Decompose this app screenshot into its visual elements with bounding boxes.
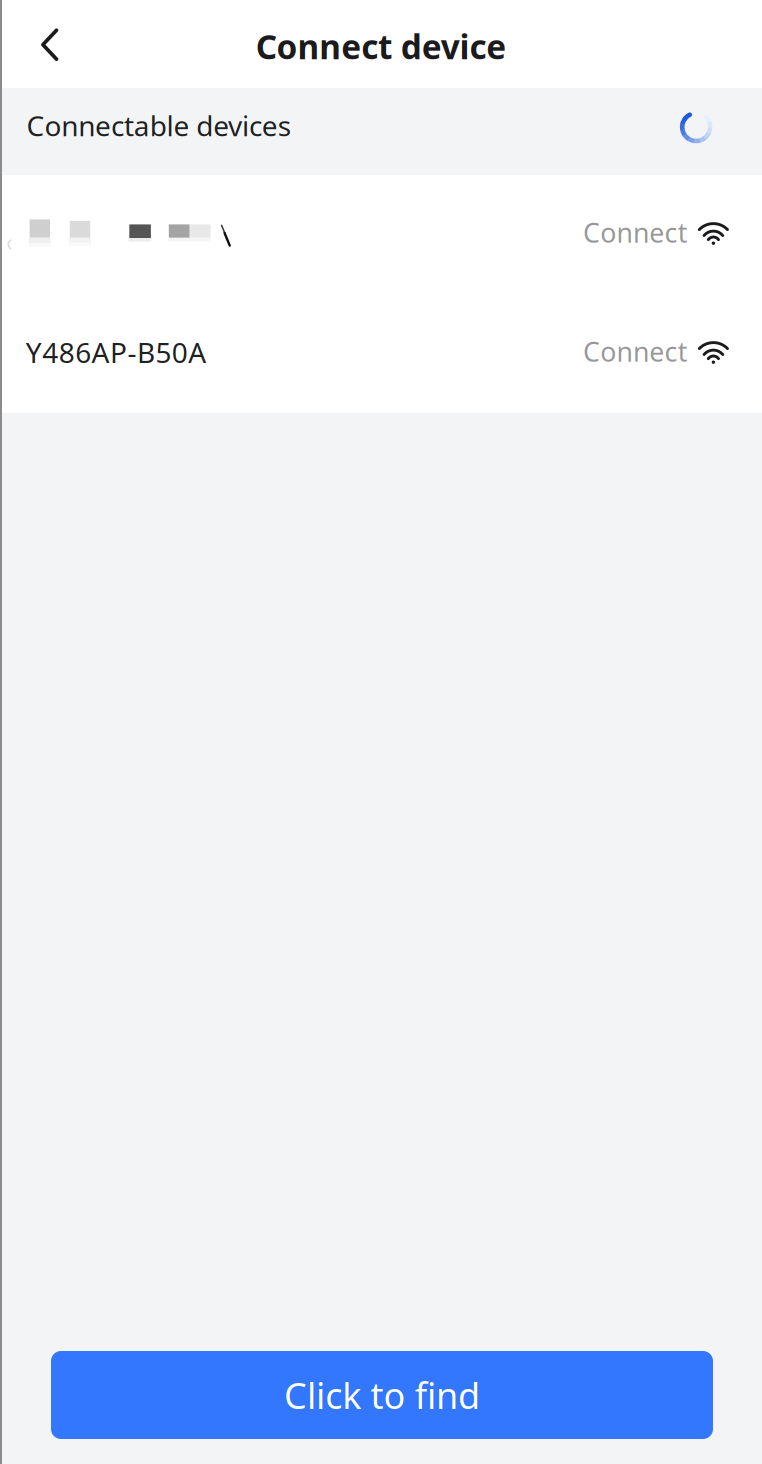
staticText: Click to find xyxy=(284,1371,480,1419)
staticText: Connect xyxy=(583,334,688,369)
button[interactable]: Y486AP-B50A xyxy=(0,294,762,413)
staticText: Connectable devices xyxy=(26,107,291,144)
staticText: Y486AP-B50A xyxy=(26,333,206,371)
button[interactable]: Click to find xyxy=(51,1351,713,1439)
button[interactable]: Connect xyxy=(0,175,762,294)
button[interactable]: Back xyxy=(24,19,76,71)
staticText: Connect xyxy=(583,215,688,250)
staticText: Connect device xyxy=(256,24,506,68)
